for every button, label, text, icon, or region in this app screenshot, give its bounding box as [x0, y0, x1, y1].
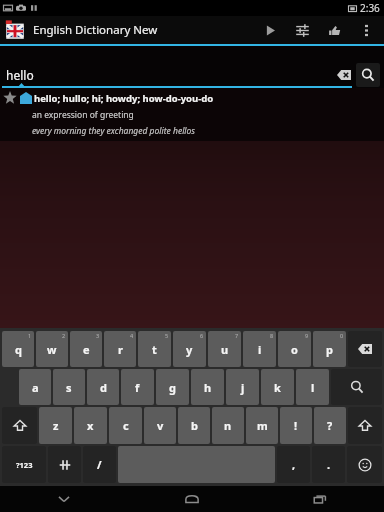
button[interactable]: ?123 [2, 446, 46, 483]
button[interactable]: f [121, 369, 154, 405]
button[interactable]: s [53, 369, 85, 405]
staticText: x [87, 418, 94, 433]
staticText: . [327, 457, 331, 472]
button[interactable]: m [246, 407, 278, 444]
button[interactable]: Recents [256, 486, 384, 512]
button[interactable]: k [261, 369, 294, 405]
staticText: h [204, 380, 212, 395]
button[interactable]: ? [314, 407, 346, 444]
staticText: ? [327, 418, 333, 433]
staticText: o [291, 342, 298, 357]
staticText: 5 [165, 332, 169, 339]
staticText: n [224, 418, 232, 433]
button[interactable]: Emoji [347, 446, 382, 483]
staticText: ! [294, 418, 298, 433]
staticText: k [274, 380, 281, 395]
staticText: 1 [28, 332, 32, 339]
button[interactable]: v [144, 407, 176, 444]
button[interactable]: More options [350, 16, 382, 44]
staticText: 9 [305, 332, 309, 339]
button[interactable]: Shift [348, 407, 382, 444]
staticText: hello; hullo; hi; howdy; how-do-you-do [34, 92, 214, 105]
button[interactable]: l [296, 369, 329, 405]
staticText: 0 [340, 332, 344, 339]
button[interactable]: Backspace [348, 331, 382, 367]
staticText: q [15, 342, 22, 357]
staticText: d [100, 380, 107, 395]
button[interactable]: n [212, 407, 244, 444]
button[interactable]: u [208, 331, 241, 367]
staticText: p [326, 342, 333, 357]
staticText: f [135, 380, 140, 395]
staticText: e [83, 342, 90, 357]
staticText: 2 [62, 332, 66, 339]
button[interactable]: Search [356, 63, 380, 87]
staticText: 7 [235, 332, 239, 339]
staticText: English Dictionary New [33, 22, 158, 38]
staticText: t [152, 342, 157, 357]
button[interactable]: a [19, 369, 51, 405]
staticText: z [53, 418, 59, 433]
button[interactable]: q [2, 331, 34, 367]
button[interactable]: o [278, 331, 311, 367]
staticText: y [186, 342, 193, 357]
staticText: ?123 [16, 460, 33, 470]
button[interactable]: Home [128, 486, 256, 512]
button[interactable]: w [36, 331, 68, 367]
button[interactable]: Search [331, 369, 382, 405]
staticText: c [123, 418, 129, 433]
button[interactable]: Play [254, 16, 286, 44]
button[interactable]: i [243, 331, 276, 367]
button[interactable]: h [191, 369, 224, 405]
staticText: 2:36 [360, 1, 380, 15]
staticText: i [258, 342, 262, 357]
button[interactable]: . [312, 446, 345, 483]
staticText: every morning they exchanged polite hell… [32, 125, 195, 137]
button[interactable]: App icon [5, 20, 25, 40]
staticText: u [221, 342, 229, 357]
button[interactable]: Shift [2, 407, 37, 444]
button[interactable]: y [173, 331, 206, 367]
button[interactable]: x [74, 407, 107, 444]
staticText: 8 [270, 332, 274, 339]
staticText: hello [6, 67, 34, 83]
button[interactable]: r [104, 331, 136, 367]
button[interactable]: Like [318, 16, 350, 44]
button[interactable]: d [87, 369, 119, 405]
button[interactable]: z [39, 407, 72, 444]
button[interactable]: Clear [334, 65, 354, 85]
button[interactable]: Settings [286, 16, 318, 44]
staticText: r [118, 342, 123, 357]
button[interactable]: p [313, 331, 346, 367]
button[interactable]: b [178, 407, 210, 444]
button[interactable]: g [156, 369, 189, 405]
button[interactable]: ! [280, 407, 312, 444]
button[interactable]: c [109, 407, 142, 444]
staticText: , [292, 457, 296, 472]
staticText: / [97, 457, 102, 472]
button[interactable]: Pronounce [18, 90, 34, 106]
staticText: j [241, 380, 245, 395]
button[interactable]: / [83, 446, 116, 483]
button[interactable]: , [277, 446, 310, 483]
button[interactable]: e [70, 331, 102, 367]
staticText: g [169, 380, 176, 395]
button[interactable]: j [226, 369, 259, 405]
button[interactable]: Hide keyboard [0, 486, 128, 512]
button[interactable]: hello [0, 62, 334, 88]
staticText: a [32, 380, 39, 395]
button[interactable]: t [138, 331, 171, 367]
staticText: m [257, 418, 268, 433]
staticText: v [157, 418, 164, 433]
staticText: 3 [96, 332, 100, 339]
button[interactable]: Favorite [0, 88, 384, 141]
button[interactable]: Favorite [2, 90, 18, 106]
staticText: 4 [130, 332, 134, 339]
staticText: l [311, 380, 315, 395]
staticText: an expression of greeting [32, 109, 134, 121]
staticText: s [66, 380, 72, 395]
staticText: b [191, 418, 198, 433]
staticText: w [47, 342, 57, 357]
button[interactable]: Input method [48, 446, 81, 483]
